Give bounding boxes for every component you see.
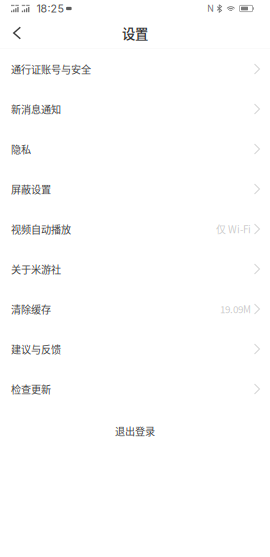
staticText: 通行证账号与安全 (11, 62, 91, 76)
button[interactable]: 清除缓存 (0, 289, 270, 329)
button[interactable]: Back (0, 19, 32, 46)
staticText: 仅 Wi-Fi (216, 222, 251, 236)
staticText: 19.09M (220, 302, 251, 316)
staticText: 关于米游社 (11, 262, 61, 276)
staticText: N (207, 3, 214, 14)
button[interactable]: 检查更新 (0, 369, 270, 409)
button[interactable]: 屏蔽设置 (0, 169, 270, 209)
button[interactable]: 隐私 (0, 129, 270, 169)
staticText: 检查更新 (11, 382, 51, 396)
staticText: 隐私 (11, 142, 31, 156)
staticText: 退出登录 (115, 424, 155, 438)
staticText: 18:25 (37, 2, 64, 15)
button[interactable]: 退出登录 (0, 409, 270, 453)
staticText: 清除缓存 (11, 302, 51, 316)
staticText: 建议与反馈 (11, 342, 61, 356)
staticText: 视频自动播放 (11, 222, 71, 236)
button[interactable]: 新消息通知 (0, 89, 270, 129)
staticText: 新消息通知 (11, 102, 61, 116)
button[interactable]: 通行证账号与安全 (0, 49, 270, 89)
staticText: 设置 (122, 23, 148, 43)
button[interactable]: 视频自动播放 (0, 209, 270, 249)
button[interactable]: 建议与反馈 (0, 329, 270, 369)
button[interactable]: 关于米游社 (0, 249, 270, 289)
staticText: 屏蔽设置 (11, 182, 51, 196)
